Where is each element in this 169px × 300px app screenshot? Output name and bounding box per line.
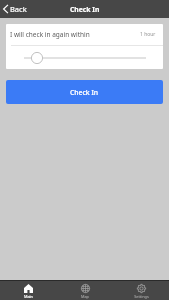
staticText: I will check in again within <box>10 30 90 39</box>
staticText: 1 hour <box>140 31 156 38</box>
button[interactable]: Map <box>57 282 113 299</box>
button[interactable]: Settings <box>113 282 169 299</box>
button[interactable]: Check in interval slider <box>6 51 163 65</box>
button[interactable]: Main <box>0 282 57 299</box>
staticText: Map <box>81 294 89 299</box>
button[interactable]: Back <box>0 1 32 17</box>
staticText: Main <box>24 294 33 299</box>
staticText: Settings <box>134 294 149 299</box>
staticText: Back <box>10 4 27 14</box>
staticText: Check In <box>70 5 100 14</box>
button[interactable]: Check In <box>6 80 163 104</box>
staticText: Check In <box>70 88 99 97</box>
